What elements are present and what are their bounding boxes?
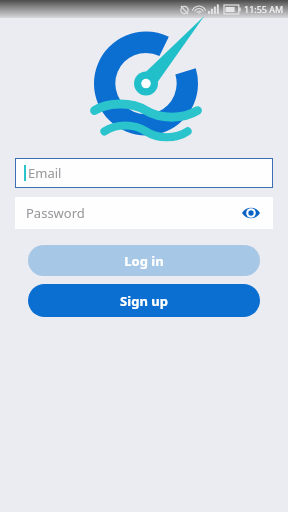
button[interactable]: Email bbox=[15, 158, 273, 188]
staticText: Email bbox=[28, 164, 62, 182]
staticText: Log in bbox=[124, 252, 164, 270]
button[interactable]: Password bbox=[15, 197, 273, 229]
button[interactable]: Show password bbox=[240, 202, 262, 224]
staticText: Password bbox=[26, 204, 85, 222]
button[interactable]: Log in bbox=[28, 245, 260, 276]
staticText: 11:55 AM bbox=[244, 3, 284, 15]
button[interactable]: Sign up bbox=[28, 284, 260, 317]
staticText: Sign up bbox=[120, 292, 168, 310]
